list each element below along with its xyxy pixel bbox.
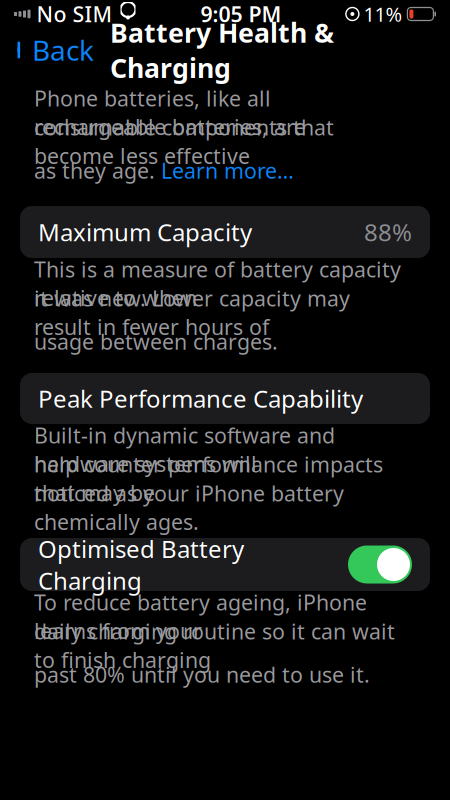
staticText: Learn more… bbox=[161, 156, 294, 185]
button[interactable]: Peak Performance Capability bbox=[20, 373, 430, 424]
staticText: 11% bbox=[363, 1, 402, 27]
staticText: help counter performance impacts that ma… bbox=[34, 450, 383, 507]
staticText: Maximum Capacity bbox=[38, 216, 252, 248]
staticText: Optimised Battery Charging bbox=[38, 533, 244, 596]
staticText: past 80% until you need to use it. bbox=[34, 660, 370, 689]
button[interactable]: Back bbox=[0, 25, 100, 75]
staticText: This is a measure of battery capacity re… bbox=[34, 255, 401, 312]
staticText: Peak Performance Capability bbox=[38, 383, 363, 414]
staticText: Built-in dynamic software and hardware s… bbox=[34, 421, 335, 478]
staticText: To reduce battery ageing, iPhone learns … bbox=[34, 588, 367, 645]
staticText: it was new. Lower capacity may result in… bbox=[34, 284, 350, 341]
button[interactable]: Optimised Battery Charging bbox=[20, 538, 430, 591]
button[interactable]: Learn more… bbox=[161, 156, 294, 185]
staticText: Battery Health & Charging bbox=[110, 15, 334, 85]
staticText: No SIM bbox=[36, 0, 112, 28]
staticText: 88% bbox=[364, 216, 412, 248]
staticText: daily charging routine so it can wait to… bbox=[34, 617, 395, 674]
staticText: 9:05 PM bbox=[200, 0, 281, 28]
staticText: Phone batteries, like all rechargeable b… bbox=[34, 84, 306, 141]
staticText: usage between charges. bbox=[34, 327, 278, 356]
staticText: consumable components that become less e… bbox=[34, 113, 334, 170]
staticText: as they age. bbox=[34, 156, 161, 185]
button[interactable]: Maximum Capacity bbox=[20, 206, 430, 258]
staticText: Back bbox=[32, 31, 94, 69]
staticText: noticed as your iPhone battery chemicall… bbox=[34, 479, 344, 536]
